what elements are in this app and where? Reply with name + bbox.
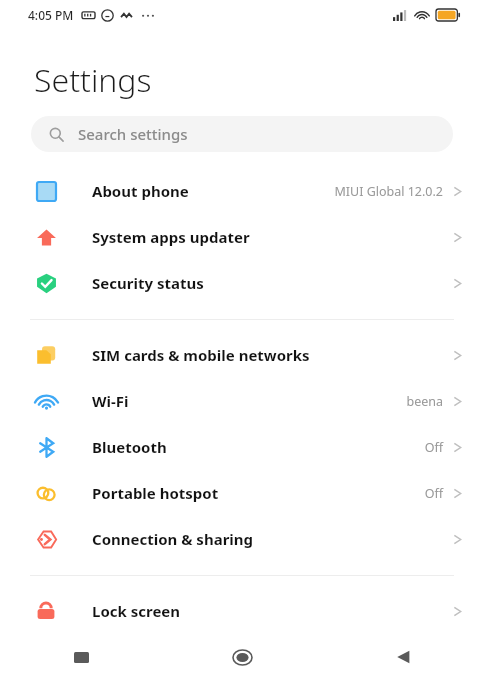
button[interactable]: Portable hotspot [0, 470, 484, 516]
button[interactable]: Home [162, 638, 323, 676]
button[interactable]: Back [323, 638, 484, 676]
button[interactable]: Search settings [31, 116, 453, 152]
staticText: Off [424, 485, 443, 502]
staticText: SIM cards & mobile networks [92, 345, 310, 365]
button[interactable]: SIM cards & mobile networks [0, 332, 484, 378]
staticText: Search settings [78, 124, 188, 144]
button[interactable]: Lock screen [0, 588, 484, 634]
staticText: About phone [92, 181, 189, 201]
staticText: Wi-Fi [92, 391, 129, 411]
button[interactable]: Bluetooth [0, 424, 484, 470]
button[interactable]: Security status [0, 260, 484, 306]
staticText: Portable hotspot [92, 483, 219, 503]
button[interactable]: System apps updater [0, 214, 484, 260]
staticText: beena [406, 393, 443, 410]
staticText: MIUI Global 12.0.2 [334, 183, 443, 200]
staticText: Settings [34, 58, 152, 102]
staticText: 4:05 PM [28, 7, 74, 23]
staticText: System apps updater [92, 227, 250, 247]
staticText: Connection & sharing [92, 529, 254, 549]
button[interactable]: Wi-Fi [0, 378, 484, 424]
button[interactable]: Connection & sharing [0, 516, 484, 562]
staticText: Lock screen [92, 601, 181, 621]
button[interactable]: About phone [0, 168, 484, 214]
staticText: Security status [92, 273, 204, 293]
staticText: Off [424, 439, 443, 456]
button[interactable]: Recent apps [0, 638, 162, 676]
staticText: Bluetooth [92, 437, 167, 457]
